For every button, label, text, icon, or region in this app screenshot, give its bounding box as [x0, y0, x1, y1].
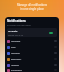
staticText: Messages	[11, 40, 21, 43]
staticText: Reminders	[11, 58, 22, 61]
staticText: Pick what you hear about	[7, 24, 31, 27]
staticText: Calls	[11, 46, 16, 49]
staticText: All alerts	[8, 30, 18, 33]
button[interactable]: Calls	[7, 44, 57, 50]
staticText: Manage all notifications in one single p…	[2, 3, 62, 10]
button[interactable]: All alerts	[7, 28, 57, 37]
staticText: Notifications	[7, 19, 26, 23]
button[interactable]: Reminders	[7, 56, 57, 62]
button[interactable]: Updates	[7, 62, 57, 68]
button[interactable]: Mentions	[7, 50, 57, 56]
button[interactable]: Messages	[7, 38, 57, 44]
button[interactable]: Promotions	[7, 68, 57, 72]
staticText: Mentions	[11, 52, 20, 55]
staticText: Updates	[11, 64, 19, 67]
staticText: Promotions	[11, 69, 22, 72]
staticText: Paused until 9 AM	[8, 34, 24, 36]
